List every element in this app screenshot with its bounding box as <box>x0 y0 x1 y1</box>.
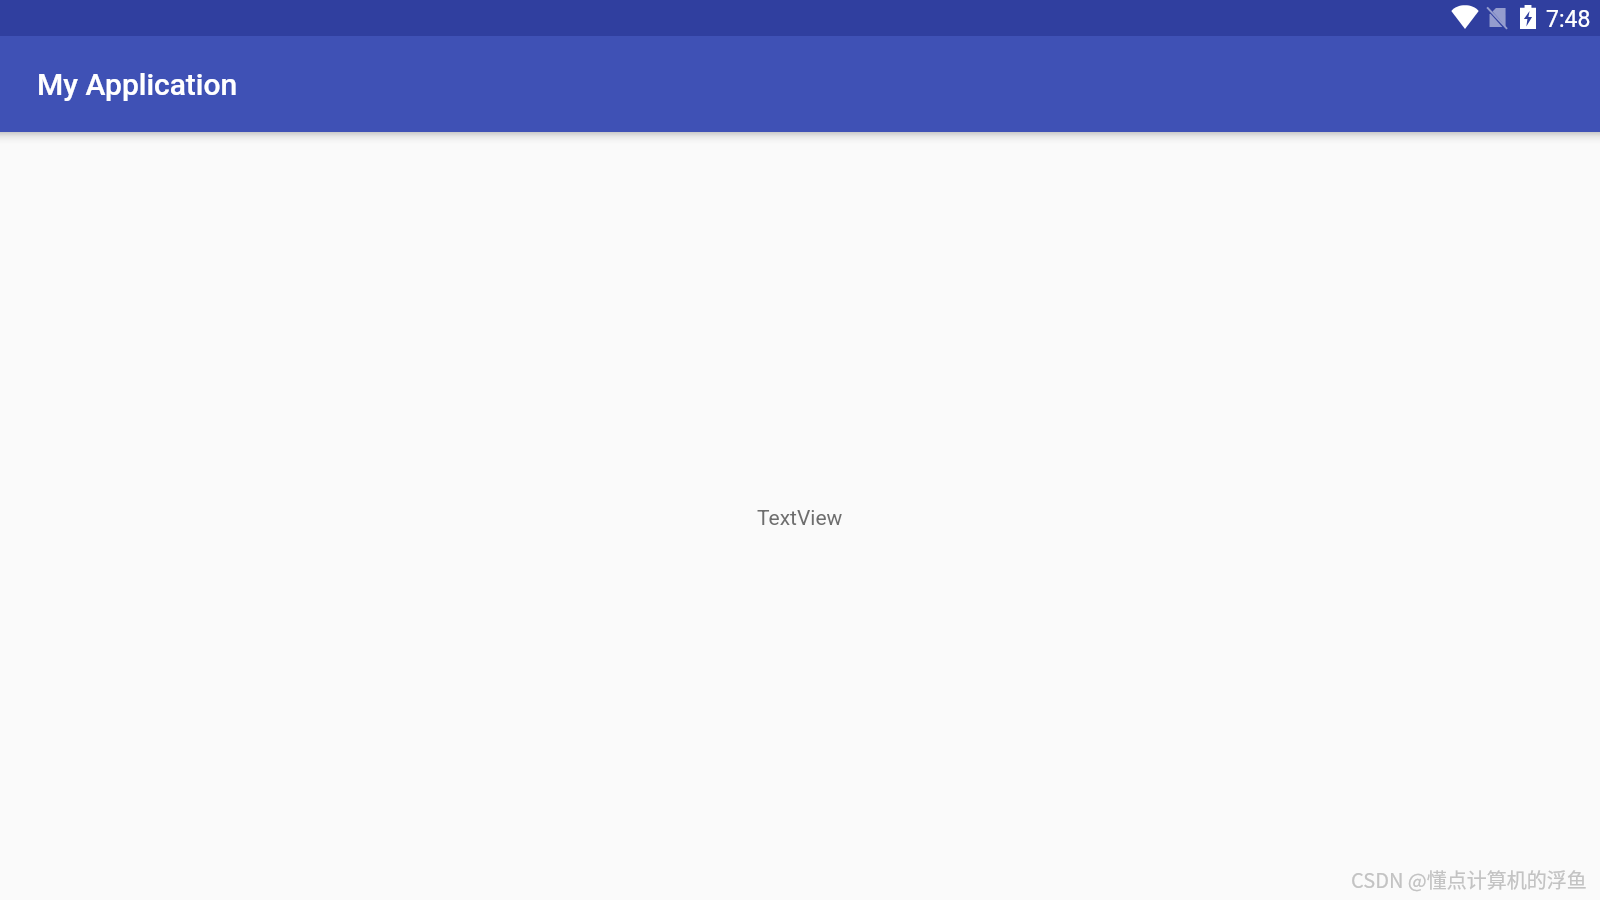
staticText: 7:48 <box>1546 6 1591 33</box>
button[interactable]: No SIM card <box>1487 6 1509 29</box>
staticText: TextView <box>757 506 843 531</box>
button[interactable]: My Application <box>0 36 1600 132</box>
staticText: CSDN @懂点计算机的浮鱼 <box>1351 865 1587 894</box>
staticText: My Application <box>37 67 238 102</box>
button[interactable]: Battery charging <box>1520 5 1536 29</box>
button[interactable]: Wi-Fi <box>1451 5 1479 29</box>
